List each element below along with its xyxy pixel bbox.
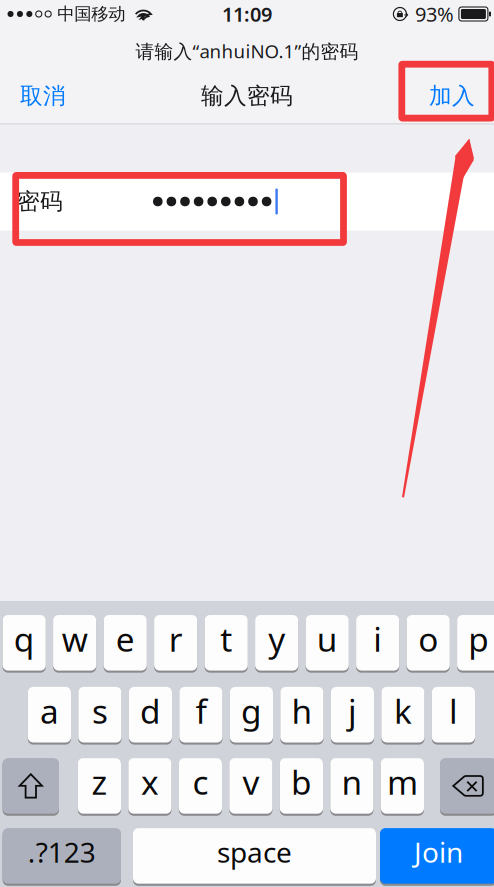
staticText: v bbox=[242, 760, 259, 804]
staticText: l bbox=[449, 689, 458, 733]
staticText: 93% bbox=[415, 1, 454, 27]
button[interactable]: k bbox=[381, 687, 424, 742]
button[interactable]: t bbox=[205, 615, 248, 671]
staticText: k bbox=[394, 689, 412, 733]
staticText: Join bbox=[414, 833, 463, 870]
button[interactable]: a bbox=[28, 687, 71, 742]
button[interactable]: c bbox=[179, 758, 222, 814]
button[interactable]: z bbox=[78, 758, 121, 814]
staticText: r bbox=[169, 617, 183, 661]
staticText: o bbox=[418, 617, 438, 661]
staticText: space bbox=[217, 833, 292, 870]
button[interactable]: n bbox=[330, 758, 373, 814]
button[interactable]: 取消 bbox=[0, 74, 86, 118]
staticText: u bbox=[317, 617, 338, 661]
button[interactable]: w bbox=[53, 615, 96, 671]
button[interactable]: u bbox=[306, 615, 349, 671]
button[interactable]: 密码 bbox=[0, 172, 494, 230]
staticText: y bbox=[268, 617, 285, 661]
staticText: 取消 bbox=[20, 82, 66, 110]
button[interactable]: p bbox=[457, 615, 494, 671]
button[interactable]: r bbox=[154, 615, 197, 671]
button[interactable]: o bbox=[407, 615, 450, 671]
staticText: i bbox=[373, 617, 382, 661]
button[interactable]: y bbox=[255, 615, 298, 671]
button[interactable]: Delete bbox=[440, 758, 494, 814]
staticText: 中国移动 bbox=[57, 3, 125, 25]
button[interactable]: l bbox=[432, 687, 475, 742]
button[interactable]: space bbox=[133, 828, 376, 884]
button[interactable]: f bbox=[179, 687, 222, 742]
staticText: 密码 bbox=[17, 188, 63, 215]
staticText: 输入密码 bbox=[201, 82, 293, 110]
staticText: q bbox=[14, 617, 35, 661]
button[interactable]: 加入 bbox=[410, 74, 494, 118]
button[interactable]: m bbox=[381, 758, 424, 814]
button[interactable]: Shift bbox=[3, 758, 59, 814]
button[interactable]: b bbox=[280, 758, 323, 814]
staticText: x bbox=[141, 760, 159, 804]
staticText: s bbox=[92, 689, 108, 733]
staticText: n bbox=[341, 760, 362, 804]
staticText: d bbox=[140, 689, 161, 733]
staticText: z bbox=[91, 760, 107, 804]
staticText: a bbox=[40, 689, 59, 733]
staticText: e bbox=[116, 617, 135, 661]
button[interactable]: e bbox=[104, 615, 147, 671]
button[interactable]: d bbox=[129, 687, 172, 742]
staticText: m bbox=[387, 760, 418, 804]
staticText: .?123 bbox=[28, 833, 96, 870]
button[interactable]: s bbox=[78, 687, 121, 742]
staticText: w bbox=[62, 617, 88, 661]
staticText: 加入 bbox=[429, 82, 475, 110]
button[interactable]: h bbox=[280, 687, 323, 742]
button[interactable]: g bbox=[230, 687, 273, 742]
button[interactable]: Join bbox=[380, 828, 494, 884]
staticText: 请输入“anhuiNO.1”的密码 bbox=[135, 39, 358, 63]
staticText: h bbox=[291, 689, 312, 733]
staticText: g bbox=[241, 689, 262, 733]
button[interactable]: x bbox=[128, 758, 171, 814]
staticText: p bbox=[468, 617, 489, 661]
staticText: b bbox=[291, 760, 312, 804]
button[interactable]: i bbox=[356, 615, 399, 671]
button[interactable]: q bbox=[3, 615, 46, 671]
staticText: c bbox=[192, 760, 208, 804]
staticText: j bbox=[348, 689, 357, 733]
staticText: 11:09 bbox=[222, 1, 272, 27]
button[interactable]: v bbox=[229, 758, 272, 814]
staticText: t bbox=[220, 617, 232, 661]
button[interactable]: .?123 bbox=[3, 828, 121, 884]
staticText: f bbox=[195, 689, 206, 733]
button[interactable]: j bbox=[331, 687, 374, 742]
